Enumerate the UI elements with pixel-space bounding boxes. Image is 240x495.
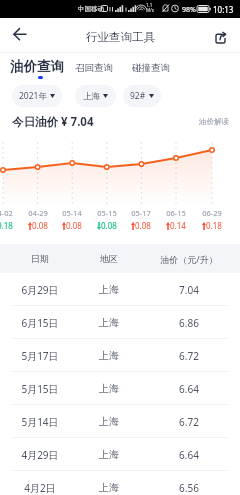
staticText: 上海	[80, 481, 138, 494]
staticText: 6.64	[138, 382, 240, 396]
staticText: 油价查询	[10, 58, 64, 75]
button[interactable]: 上海	[75, 85, 116, 107]
button[interactable]: 92#	[123, 85, 161, 107]
staticText: 06-15	[159, 208, 193, 218]
staticText: 0.08	[32, 220, 48, 231]
staticText: 6月15日	[0, 316, 80, 330]
staticText: 上海	[80, 448, 138, 461]
staticText: 4月29日	[0, 448, 80, 462]
staticText: 上海	[80, 349, 138, 362]
staticText: 0.14	[170, 220, 186, 231]
staticText: 6.72	[138, 415, 240, 429]
button[interactable]: 5月14日	[0, 405, 240, 438]
staticText: 上海	[83, 91, 100, 102]
staticText: 碰撞查询	[132, 62, 170, 74]
staticText: 油价（元/升）	[138, 253, 240, 265]
button[interactable]: Share	[213, 31, 228, 46]
staticText: 5月14日	[0, 415, 80, 429]
staticText: 上海	[80, 316, 138, 329]
button[interactable]: 6月29日	[0, 273, 240, 306]
staticText: 05-17	[124, 208, 158, 218]
button[interactable]: 油价解读	[199, 117, 229, 126]
staticText: 中国移动	[78, 5, 104, 13]
staticText: 10:13	[213, 4, 234, 15]
staticText: 0.18	[206, 220, 222, 231]
staticText: 6.72	[138, 349, 240, 363]
staticText: 召回查询	[75, 62, 113, 74]
staticText: 0.18	[0, 220, 13, 231]
button[interactable]: 4月2日	[0, 471, 240, 495]
staticText: 04-02	[0, 208, 20, 218]
staticText: 上海	[80, 283, 138, 296]
button[interactable]: 召回查询	[75, 62, 113, 74]
button[interactable]: 6月15日	[0, 306, 240, 339]
staticText: 6.56	[138, 481, 240, 495]
staticText: 04-29	[21, 208, 55, 218]
button[interactable]: 4月29日	[0, 438, 240, 471]
staticText: 0.08	[135, 220, 151, 231]
staticText: 行业查询工具	[86, 30, 155, 44]
staticText: 油价解读	[199, 117, 229, 126]
staticText: 1.1 M/s	[146, 2, 154, 13]
button[interactable]: 5月17日	[0, 339, 240, 372]
staticText: 0.08	[101, 220, 117, 231]
button[interactable]: 碰撞查询	[132, 62, 170, 74]
staticText: 05-15	[90, 208, 124, 218]
staticText: 6.86	[138, 316, 240, 330]
staticText: 0.08	[66, 220, 82, 231]
staticText: 今日油价 ¥ 7.04	[12, 114, 94, 129]
button[interactable]: 5月15日	[0, 372, 240, 405]
staticText: 日期	[0, 253, 80, 264]
button[interactable]: Back	[8, 23, 30, 45]
staticText: 6.64	[138, 448, 240, 462]
staticText: 06-29	[195, 208, 229, 218]
staticText: 7.04	[138, 283, 240, 297]
button[interactable]: 油价查询	[10, 58, 64, 79]
button[interactable]: 2021年	[12, 85, 62, 107]
staticText: 上海	[80, 415, 138, 428]
staticText: 地区	[80, 253, 138, 264]
staticText: 5月17日	[0, 349, 80, 363]
staticText: 6月29日	[0, 283, 80, 297]
staticText: 98%	[182, 5, 196, 15]
staticText: 2021年	[19, 90, 47, 102]
staticText: 4月2日	[0, 481, 80, 495]
staticText: 05-14	[55, 208, 89, 218]
staticText: 5月15日	[0, 382, 80, 396]
staticText: 92#	[130, 90, 146, 102]
staticText: 上海	[80, 382, 138, 395]
